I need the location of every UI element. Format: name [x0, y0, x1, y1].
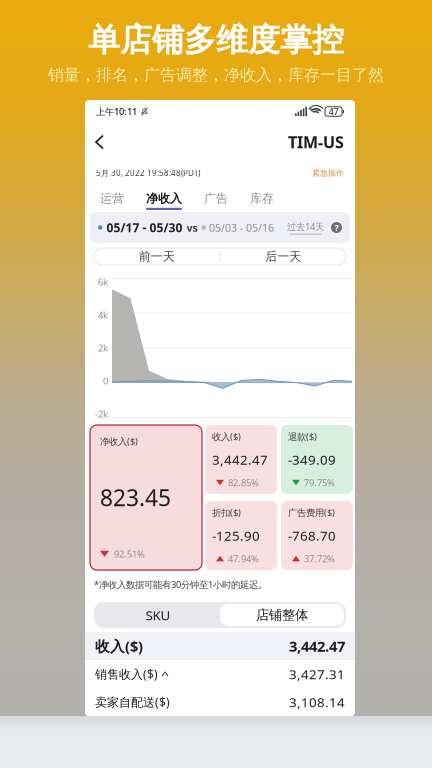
staticText: 前一天: [139, 249, 175, 264]
button[interactable]: 退款($): [281, 425, 353, 494]
staticText: 收入($): [95, 636, 143, 656]
staticText: 上午10:11: [96, 105, 137, 118]
button[interactable]: 前一天: [94, 248, 219, 265]
staticText: 广告费用($): [288, 506, 335, 519]
staticText: 收入($): [212, 430, 241, 443]
staticText: 销量，排名，广告调整，净收入，库存一目了然: [48, 65, 384, 85]
staticText: 37.72%: [304, 552, 335, 565]
staticText: 5月 30, 2022 19:58:48(PDT): [96, 168, 200, 178]
staticText: 05/03 - 05/16: [209, 220, 274, 235]
button[interactable]: 运营: [89, 185, 135, 210]
staticText: 紧急操作: [312, 168, 344, 178]
staticText: 3,442.47: [289, 636, 345, 656]
staticText: 店铺整体: [256, 607, 308, 623]
staticText: 823.45: [100, 482, 171, 512]
staticText: 过去14天: [287, 220, 324, 233]
staticText: 净收入($): [100, 435, 138, 447]
button[interactable]: 折扣($): [205, 501, 277, 570]
button[interactable]: 广告费用($): [281, 501, 353, 570]
staticText: 3,427.31: [289, 665, 345, 683]
staticText: -768.70: [288, 527, 336, 544]
button[interactable]: 过去14天: [287, 220, 324, 235]
staticText: vs: [186, 220, 197, 235]
button[interactable]: 销售收入($): [85, 660, 355, 688]
button[interactable]: Help: [331, 222, 342, 233]
staticText: SKU: [145, 606, 170, 624]
button[interactable]: 店铺整体: [220, 604, 344, 626]
staticText: 后一天: [265, 249, 301, 264]
button[interactable]: 广告: [193, 185, 239, 210]
staticText: 销售收入($): [95, 666, 158, 682]
staticText: 单店铺多维度掌控: [88, 20, 344, 60]
staticText: 库存: [250, 191, 274, 206]
staticText: 卖家自配送($): [95, 694, 170, 710]
staticText: 广告: [204, 191, 228, 206]
staticText: -2k: [95, 408, 108, 420]
staticText: TIM-US: [288, 131, 344, 153]
staticText: 0: [103, 375, 108, 387]
staticText: 3,108.14: [289, 693, 345, 711]
staticText: 3,442.47: [212, 451, 268, 468]
staticText: 47.94%: [228, 552, 259, 565]
staticText: 折扣($): [212, 506, 241, 519]
button[interactable]: 库存: [239, 185, 285, 210]
staticText: 运营: [100, 191, 124, 206]
staticText: 2k: [98, 342, 108, 354]
staticText: 92.51%: [114, 548, 145, 560]
staticText: -349.09: [288, 451, 336, 468]
staticText: 净收入: [146, 191, 182, 206]
staticText: *净收入数据可能有30分钟至1小时的延迟。: [94, 578, 267, 591]
button[interactable]: 净收入: [135, 185, 193, 210]
button[interactable]: Back: [85, 127, 114, 157]
button[interactable]: SKU: [96, 604, 220, 626]
staticText: 79.75%: [304, 476, 335, 489]
staticText: 4k: [98, 309, 108, 321]
button[interactable]: 后一天: [220, 248, 346, 265]
staticText: 退款($): [288, 430, 317, 443]
button[interactable]: 净收入($): [90, 425, 202, 570]
button[interactable]: 紧急操作: [312, 168, 344, 178]
button[interactable]: 收入($): [205, 425, 277, 494]
staticText: ?: [334, 221, 338, 234]
staticText: 05/17 - 05/30: [106, 219, 182, 235]
staticText: 6k: [98, 276, 108, 288]
button[interactable]: 卖家自配送($): [85, 688, 355, 716]
staticText: -125.90: [212, 527, 260, 544]
button[interactable]: 收入($): [85, 632, 355, 660]
staticText: 47: [328, 105, 338, 118]
staticText: 82.85%: [228, 476, 259, 489]
